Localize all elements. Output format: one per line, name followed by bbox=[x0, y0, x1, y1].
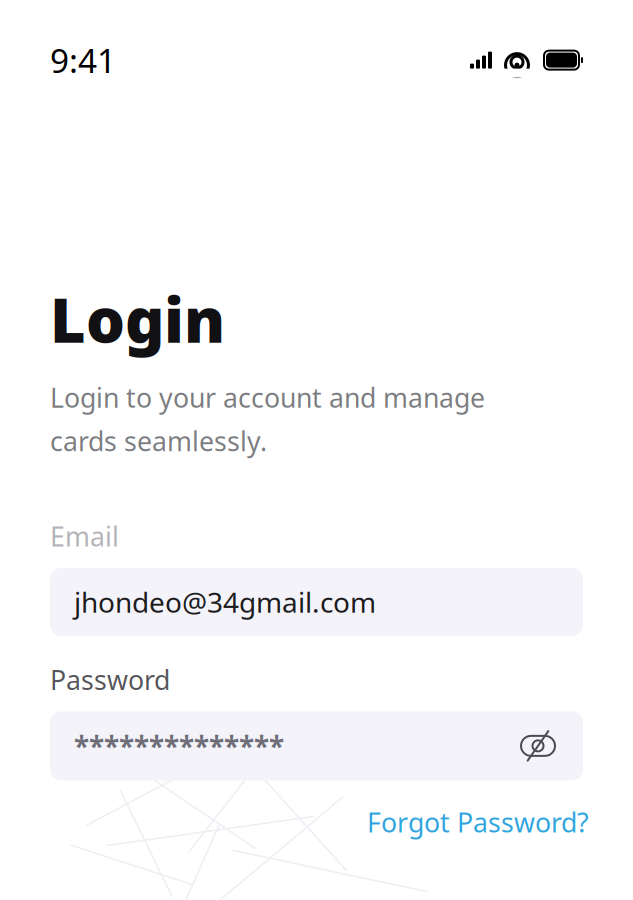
staticText: ************** bbox=[74, 727, 284, 764]
button[interactable]: Forgot Password? bbox=[367, 804, 589, 840]
staticText: Forgot Password? bbox=[367, 804, 589, 840]
staticText: Password bbox=[50, 662, 170, 697]
staticText: jhondeo@34gmail.com bbox=[74, 583, 376, 621]
staticText: cards seamlessly. bbox=[50, 423, 267, 458]
button[interactable]: jhondeo@34gmail.com bbox=[50, 568, 583, 636]
button[interactable]: ************** bbox=[50, 711, 583, 780]
staticText: Email bbox=[50, 518, 119, 554]
staticText: Login bbox=[50, 278, 225, 360]
staticText: 9:41 bbox=[50, 38, 116, 82]
staticText: Login to your account and manage bbox=[50, 380, 485, 415]
